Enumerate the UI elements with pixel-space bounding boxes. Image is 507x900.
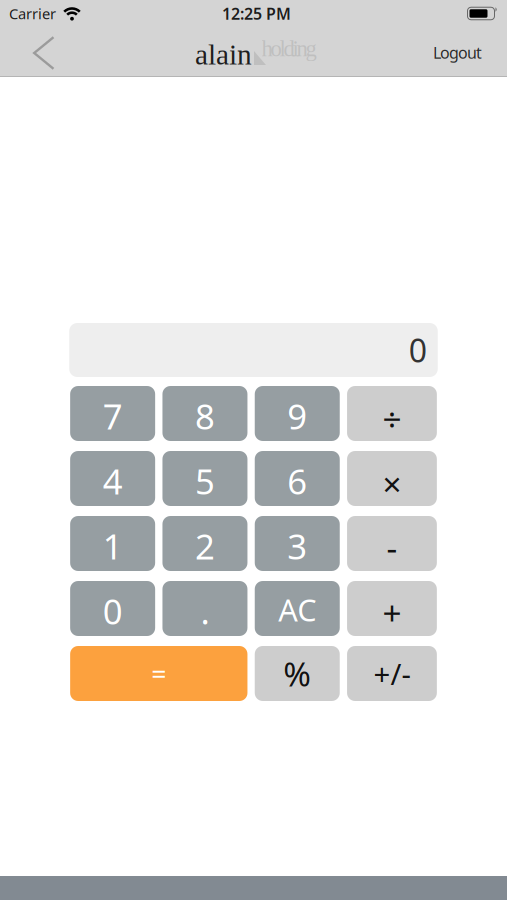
button[interactable]: +/- xyxy=(347,646,437,701)
button[interactable]: 9 xyxy=(255,386,340,441)
button[interactable]: 2 xyxy=(162,516,247,571)
staticText: +/- xyxy=(373,654,410,693)
staticText: 8 xyxy=(195,393,215,439)
staticText: - xyxy=(386,525,397,570)
staticText: holding xyxy=(261,36,316,61)
button[interactable]: Logout xyxy=(433,41,507,62)
staticText: + xyxy=(382,590,401,635)
staticText: 7 xyxy=(103,393,123,439)
button[interactable]: × xyxy=(347,451,437,506)
button[interactable]: 7 xyxy=(70,386,155,441)
button[interactable]: = xyxy=(70,646,247,701)
staticText: 9 xyxy=(287,393,307,439)
button[interactable]: ÷ xyxy=(347,386,437,441)
staticText: ÷ xyxy=(382,396,401,441)
staticText: 3 xyxy=(287,523,307,569)
staticText: × xyxy=(382,461,401,506)
staticText: 1 xyxy=(103,523,123,569)
button[interactable]: AC xyxy=(255,581,340,636)
staticText: 6 xyxy=(287,458,307,504)
button[interactable]: 5 xyxy=(162,451,247,506)
staticText: 4 xyxy=(103,458,123,504)
button[interactable]: % xyxy=(255,646,340,701)
staticText: 0 xyxy=(103,588,123,634)
staticText: % xyxy=(283,651,311,696)
staticText: Logout xyxy=(433,42,482,63)
button[interactable]: 1 xyxy=(70,516,155,571)
staticText: 5 xyxy=(195,458,215,504)
staticText: Carrier xyxy=(9,4,56,23)
staticText: . xyxy=(200,588,209,634)
staticText: = xyxy=(151,656,166,691)
button[interactable]: 3 xyxy=(255,516,340,571)
button[interactable]: 8 xyxy=(162,386,247,441)
button[interactable]: + xyxy=(347,581,437,636)
staticText: alain xyxy=(195,38,252,71)
staticText: AC xyxy=(278,589,316,630)
staticText: 12:25 PM xyxy=(222,3,291,24)
button[interactable]: 0 xyxy=(70,581,155,636)
staticText: 2 xyxy=(195,523,215,569)
button[interactable]: 4 xyxy=(70,451,155,506)
button[interactable]: 6 xyxy=(255,451,340,506)
button[interactable]: . xyxy=(162,581,247,636)
button[interactable]: - xyxy=(347,516,437,571)
staticText: 0 xyxy=(409,329,427,371)
button[interactable]: Back xyxy=(0,34,55,68)
